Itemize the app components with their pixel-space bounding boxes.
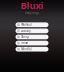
staticText: Heart: [21, 41, 28, 45]
button[interactable]: Workout: [15, 22, 48, 27]
button[interactable]: Mindful: [15, 47, 48, 52]
staticText: Mindful: [21, 47, 32, 51]
button[interactable]: Activity: [15, 28, 48, 33]
staticText: Bluxi: [20, 0, 43, 12]
staticText: Workout: [21, 23, 32, 26]
staticText: Activity: [21, 29, 30, 33]
button[interactable]: Sleep: [15, 35, 48, 39]
button[interactable]: Heart: [15, 41, 48, 45]
staticText: Sleep: [21, 35, 29, 39]
staticText: daily rings: [25, 11, 39, 15]
